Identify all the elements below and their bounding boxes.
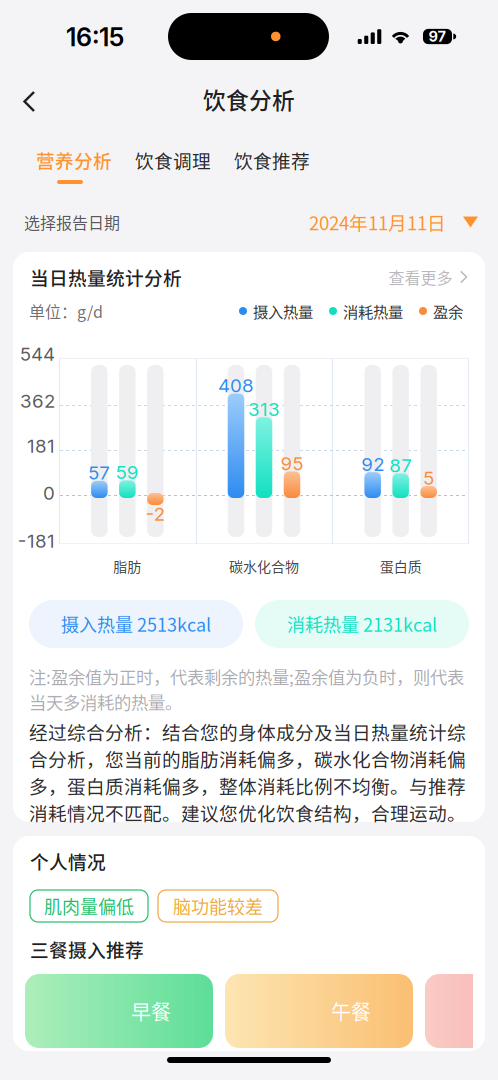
staticText: 三餐摄入推荐	[30, 935, 144, 962]
staticText: 544	[20, 343, 55, 365]
staticText: -181	[18, 530, 55, 552]
staticText: 碳水化合物	[229, 556, 299, 576]
button[interactable]: 返回	[8, 76, 51, 127]
staticText: 57	[88, 461, 110, 484]
staticText: 摄入热量 2513kcal	[61, 611, 211, 637]
button[interactable]: 2024年11月11日	[308, 205, 478, 239]
staticText: 摄入热量	[253, 300, 313, 322]
staticText: 181	[27, 435, 55, 457]
staticText: 饮食分析	[203, 83, 295, 115]
staticText: 注:盈余值为正时，代表剩余的热量;盈余值为负时，则代表当天多消耗的热量。	[29, 664, 464, 714]
staticText: 营养分析	[36, 146, 112, 173]
button[interactable]: 查看更多	[338, 264, 468, 290]
staticText: 87	[389, 454, 412, 477]
staticText: 饮食推荐	[234, 146, 310, 173]
staticText: 消耗热量	[343, 300, 403, 322]
staticText: 选择报告日期	[24, 210, 120, 234]
staticText: 92	[361, 453, 384, 475]
staticText: 个人情况	[30, 847, 106, 874]
staticText: 16:15	[66, 22, 124, 52]
button[interactable]: 饮食推荐	[234, 148, 310, 194]
staticText: 蛋白质	[380, 556, 422, 576]
staticText: 脑功能较差	[173, 893, 263, 919]
staticText: 饮食调理	[135, 146, 211, 173]
staticText: 查看更多	[388, 265, 452, 289]
staticText: 408	[218, 374, 254, 397]
staticText: 经过综合分析：结合您的身体成分及当日热量统计综合分析，您当前的脂肪消耗偏多，碳水…	[29, 718, 466, 826]
staticText: 单位：g/d	[29, 299, 103, 323]
staticText: 消耗热量 2131kcal	[287, 611, 437, 637]
staticText: 95	[280, 452, 303, 475]
staticText: 脂肪	[113, 556, 141, 576]
staticText: -2	[146, 503, 165, 525]
staticText: 早餐	[131, 996, 171, 1025]
staticText: 362	[20, 390, 55, 412]
staticText: 午餐	[331, 996, 371, 1025]
staticText: 当日热量统计分析	[30, 263, 182, 290]
staticText: 2024年11月11日	[309, 208, 446, 235]
staticText: 肌肉量偏低	[44, 893, 134, 919]
button[interactable]: 营养分析	[36, 148, 112, 194]
staticText: 313	[248, 398, 280, 420]
button[interactable]: 饮食调理	[135, 148, 211, 194]
staticText: 盈余	[433, 300, 463, 322]
staticText: 97	[428, 28, 446, 45]
staticText: 0	[43, 482, 55, 504]
staticText: 59	[116, 461, 139, 484]
staticText: 5	[423, 467, 434, 489]
